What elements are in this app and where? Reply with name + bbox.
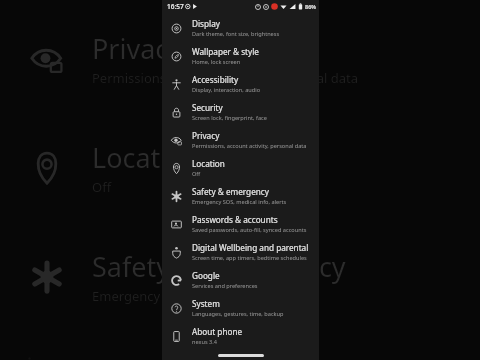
staticText: 16:57 [167, 2, 184, 11]
button[interactable]: About phone [162, 322, 319, 350]
staticText: Google [192, 270, 220, 281]
staticText: About phone [192, 326, 243, 337]
staticText: Privacy [92, 30, 183, 67]
staticText: Passwords & accounts [92, 357, 375, 360]
staticText: Emergency SOS, medical info, alerts [192, 198, 287, 206]
button[interactable]: Digital Wellbeing and parental controls [162, 238, 319, 266]
staticText: Location [92, 139, 201, 176]
staticText: Emergency SOS, medical info, alerts [92, 287, 311, 305]
staticText: Dark theme, font size, brightness [192, 30, 280, 38]
button[interactable]: Privacy [162, 126, 319, 154]
staticText: Privacy [192, 130, 220, 141]
staticText: Wallpaper & style [192, 46, 259, 57]
staticText: Languages, gestures, time, backup [192, 310, 284, 318]
button[interactable]: Display [162, 14, 319, 42]
staticText: Permissions, account activity, personal … [192, 142, 307, 150]
staticText: Passwords & accounts [192, 214, 278, 225]
button[interactable]: Google [162, 266, 319, 294]
staticText: Permissions, account activity, personal … [92, 69, 358, 87]
staticText: Safety & emergency [92, 248, 346, 285]
staticText: Digital Wellbeing and parental controls [192, 242, 315, 253]
staticText: Display [192, 18, 220, 29]
staticText: Off [92, 178, 112, 196]
button[interactable]: Accessibility [162, 70, 319, 98]
staticText: Screen lock, fingerprint, face [192, 114, 267, 122]
staticText: Accessibility [192, 74, 239, 85]
button[interactable]: System [162, 294, 319, 322]
staticText: Security [192, 102, 223, 113]
button[interactable]: Safety & emergency [162, 182, 319, 210]
other: Home [218, 354, 264, 357]
staticText: Location [192, 158, 225, 169]
staticText: Display, interaction, audio [192, 86, 261, 94]
staticText: System [192, 298, 220, 309]
staticText: 86% [305, 3, 316, 10]
staticText: Services and preferences [192, 282, 258, 290]
button[interactable]: Security [162, 98, 319, 126]
staticText: Screen time, app timers, bedtime schedul… [192, 254, 307, 262]
button[interactable]: Passwords & accounts [162, 210, 319, 238]
staticText: Safety & emergency [192, 186, 269, 197]
button[interactable]: Location [162, 154, 319, 182]
staticText: Home, lock screen [192, 58, 241, 66]
staticText: nexus 3.4 [192, 338, 217, 346]
button[interactable]: Wallpaper & style [162, 42, 319, 70]
staticText: Saved passwords, auto-fill, synced accou… [192, 226, 307, 234]
staticText: Off [192, 170, 201, 178]
